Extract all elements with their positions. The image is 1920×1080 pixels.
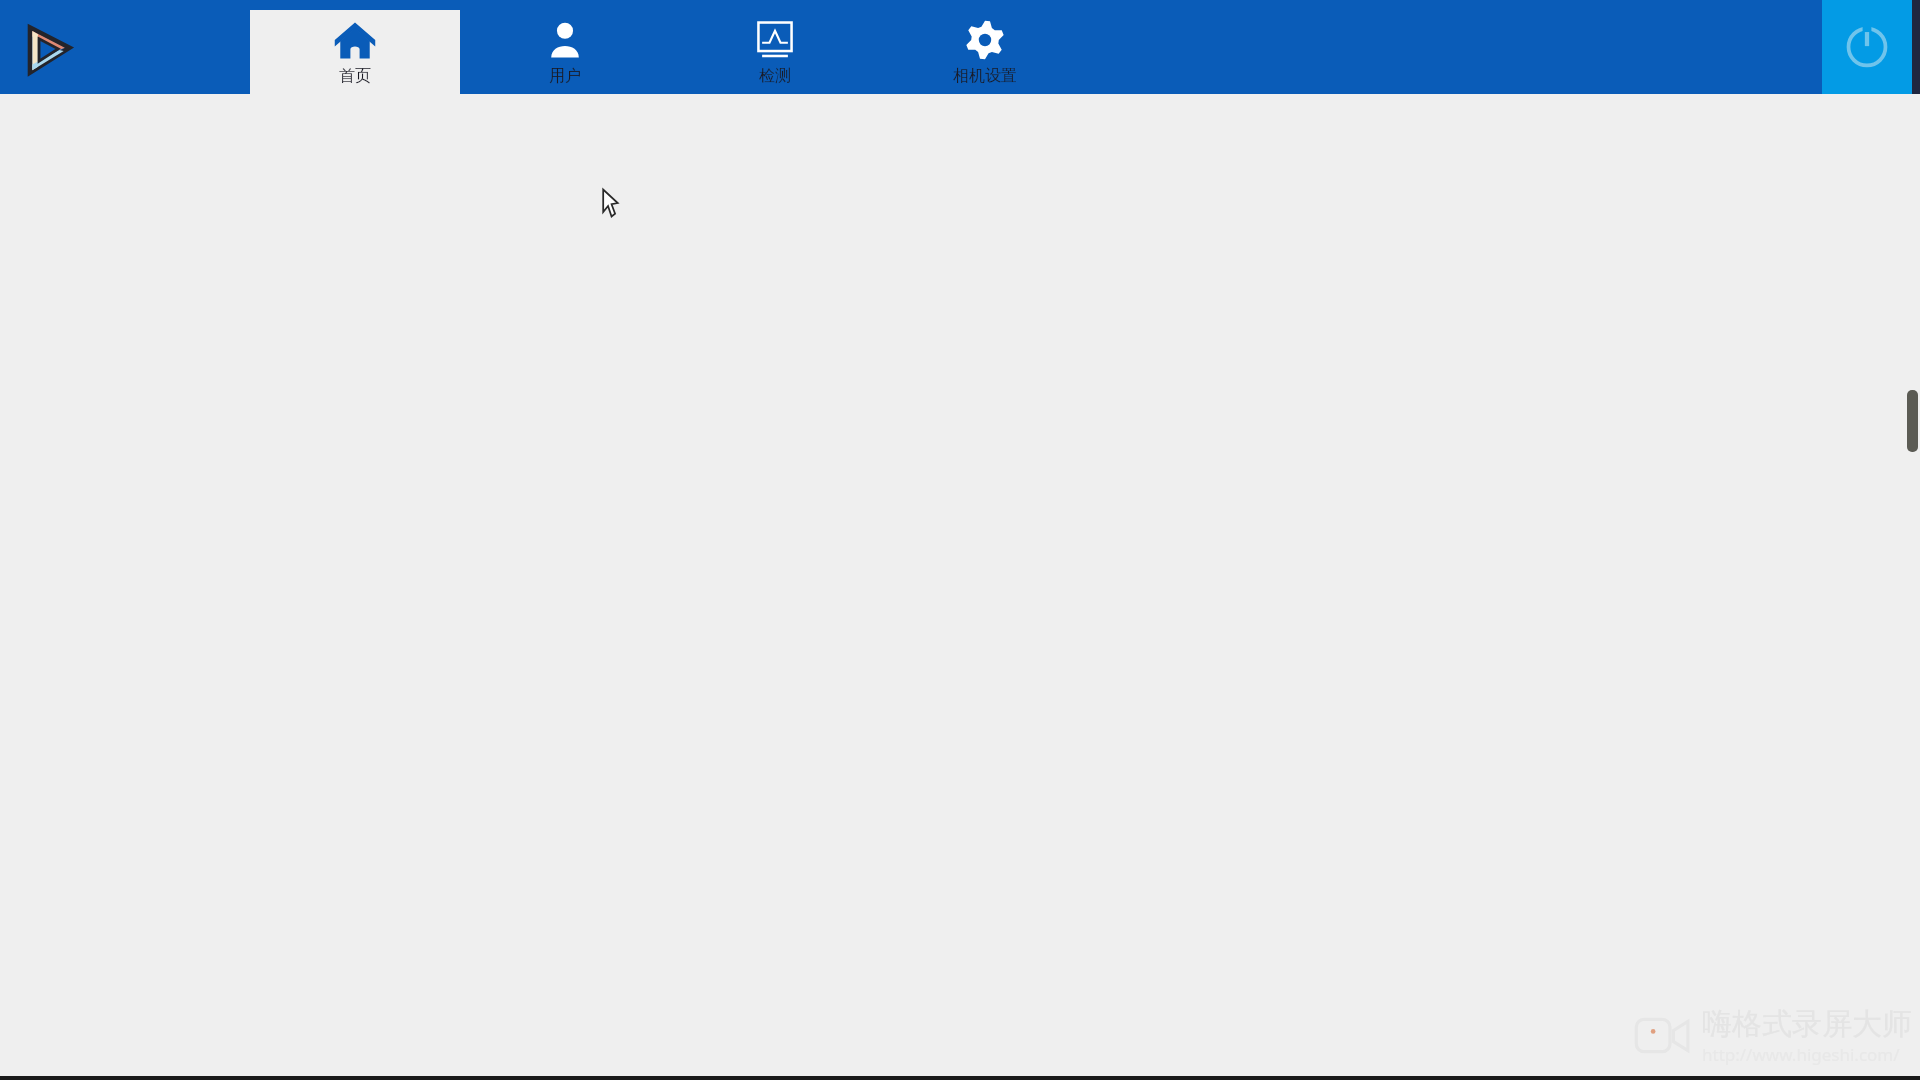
staticText: 首页 (339, 66, 371, 86)
button[interactable]: 用户 (460, 10, 670, 94)
staticText: 用户 (549, 66, 581, 86)
button[interactable]: 检测 (670, 10, 880, 94)
button[interactable]: 首页 (250, 10, 460, 94)
button[interactable]: 相机设置 (880, 10, 1090, 94)
staticText: 嗨格式录屏大师 (1702, 1005, 1912, 1043)
staticText: 检测 (759, 66, 791, 86)
button[interactable]: Logo (20, 22, 76, 78)
button[interactable]: Power (1822, 0, 1912, 94)
staticText: 相机设置 (953, 66, 1017, 86)
